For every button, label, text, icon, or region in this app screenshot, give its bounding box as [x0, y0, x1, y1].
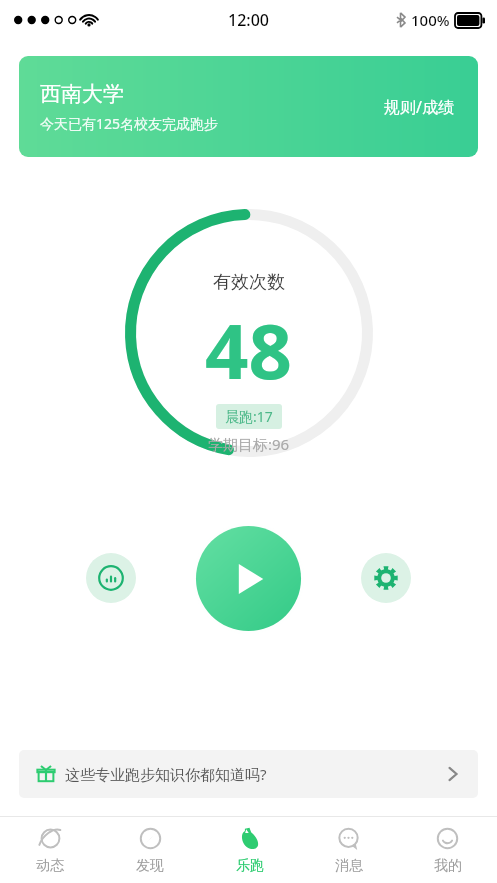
button[interactable]: 消息 — [299, 817, 398, 883]
staticText: 这些专业跑步知识你都知道吗? — [65, 764, 267, 784]
button[interactable]: 规则/成绩 — [378, 90, 460, 124]
staticText: 48 — [205, 298, 292, 402]
staticText: 发现 — [136, 857, 164, 875]
button[interactable]: 动态 — [0, 817, 100, 883]
button[interactable]: 西南大学 — [19, 56, 478, 157]
button[interactable]: Statistics — [86, 553, 136, 603]
button[interactable]: 发现 — [100, 817, 200, 883]
staticText: 今天已有125名校友完成跑步 — [40, 114, 219, 133]
staticText: 12:00 — [228, 9, 269, 31]
staticText: 晨跑:17 — [225, 407, 273, 426]
button[interactable]: Settings — [361, 553, 411, 603]
button[interactable]: 这些专业跑步知识你都知道吗? — [19, 750, 478, 798]
staticText: 我的 — [434, 857, 462, 875]
staticText: 动态 — [36, 857, 64, 875]
button[interactable]: Start run — [196, 526, 302, 632]
staticText: 西南大学 — [40, 81, 124, 107]
staticText: 100% — [411, 10, 450, 30]
button[interactable]: 我的 — [398, 817, 497, 883]
staticText: 消息 — [335, 857, 363, 875]
staticText: 乐跑 — [236, 857, 264, 875]
button[interactable]: 乐跑 — [200, 817, 299, 883]
staticText: 有效次数 — [213, 271, 285, 294]
staticText: 学期目标:96 — [208, 434, 290, 454]
staticText: 规则/成绩 — [384, 96, 454, 118]
